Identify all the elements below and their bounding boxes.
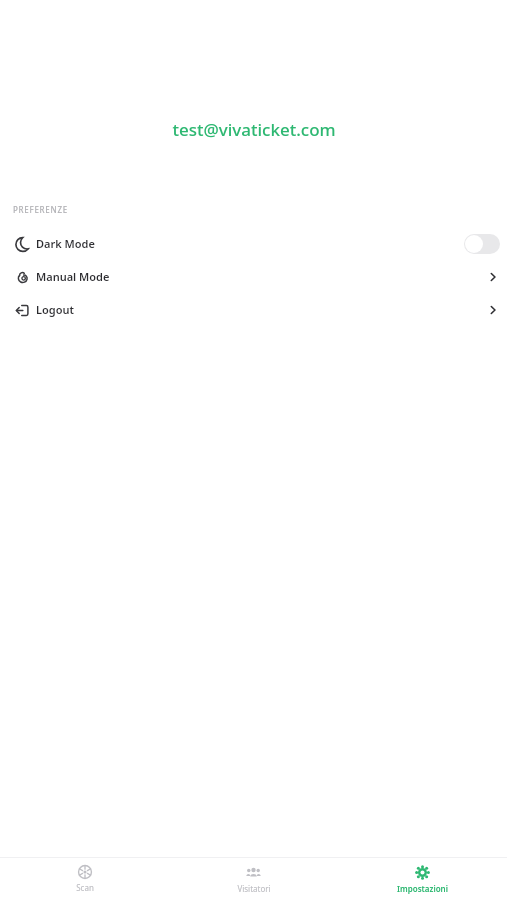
button[interactable]: Logout bbox=[0, 293, 507, 326]
staticText: test@vivaticket.com bbox=[172, 118, 336, 141]
staticText: Visitatori bbox=[237, 883, 271, 894]
staticText: Impostazioni bbox=[397, 883, 448, 894]
button[interactable]: Manual Mode bbox=[0, 260, 507, 293]
staticText: Logout bbox=[36, 302, 74, 317]
staticText: Dark Mode bbox=[36, 236, 95, 251]
other: Open bbox=[486, 270, 500, 284]
other: Open bbox=[486, 303, 500, 317]
button[interactable]: Impostazioni bbox=[338, 861, 507, 898]
button[interactable]: Dark Mode bbox=[0, 227, 507, 260]
button[interactable]: Dark Mode toggle bbox=[464, 234, 500, 254]
button[interactable]: Scan bbox=[0, 861, 169, 897]
staticText: Manual Mode bbox=[36, 269, 110, 284]
button[interactable]: Visitatori bbox=[169, 861, 338, 898]
staticText: PREFERENZE bbox=[13, 204, 68, 215]
staticText: Scan bbox=[76, 882, 94, 893]
